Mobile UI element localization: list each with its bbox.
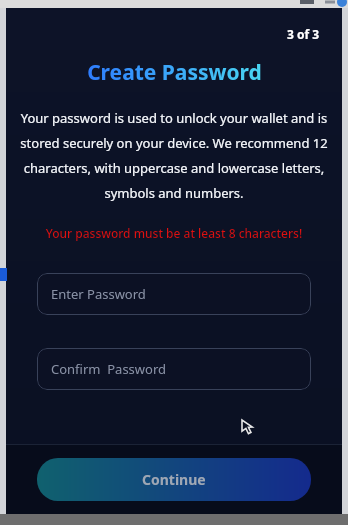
button[interactable]: Confirm Password — [37, 348, 311, 390]
staticText: Your password must be at least 8 charact… — [6, 225, 342, 241]
staticText: Create Password — [87, 58, 262, 87]
button[interactable]: Continue — [37, 458, 311, 501]
staticText: 3 of 3 — [287, 26, 320, 42]
staticText: Continue — [142, 470, 206, 489]
staticText: Enter Password — [51, 285, 146, 303]
button[interactable]: Enter Password — [37, 273, 311, 315]
staticText: Your password is used to unlock your wal… — [18, 109, 330, 201]
staticText: Confirm Password — [51, 360, 167, 378]
